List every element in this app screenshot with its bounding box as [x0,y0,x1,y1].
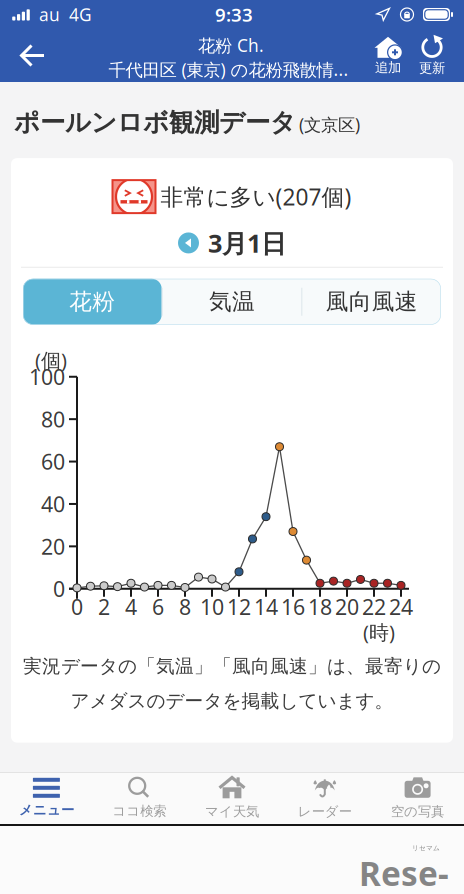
staticText: ポールンロボ観測データ [14,107,296,138]
staticText: アメダスのデータを掲載しています。 [70,690,393,713]
button[interactable]: 風向風速 [302,279,441,325]
staticText: 14 [254,593,278,621]
button[interactable]: 更新 [410,29,464,82]
staticText: 40 [41,490,65,518]
staticText: 花粉 [69,288,115,316]
button[interactable]: メニュー [0,776,93,820]
staticText: (個) [35,347,67,373]
staticText: 8 [179,593,191,621]
staticText: (文京区) [299,113,360,136]
staticText: 花粉 Ch. [198,34,264,57]
staticText: au [39,3,60,26]
staticText: 更新 [419,60,445,76]
staticText: 16 [281,593,305,621]
staticText: リセマム [412,844,440,852]
button[interactable]: マイ天気 [186,776,278,820]
staticText: 実況データの「気温」「風向風速」は、最寄りの [23,655,441,678]
staticText: 22 [362,593,386,621]
staticText: メニュー [19,802,74,818]
staticText: ココ検索 [112,803,166,819]
staticText: 2 [98,593,110,621]
staticText: 3月1日 [208,226,286,260]
staticText: 非常に多い(207個) [160,182,351,212]
button[interactable]: 追加 [366,29,410,82]
staticText: 20 [335,593,359,621]
staticText: 60 [41,447,65,476]
staticText: 追加 [375,59,401,76]
staticText: ReseMom. [359,851,453,894]
staticText: 空の写真 [391,803,444,820]
button[interactable]: レーダー [278,776,371,820]
staticText: 風向風速 [326,288,418,316]
staticText: 80 [41,405,65,433]
staticText: レーダー [298,803,352,820]
staticText: 気温 [209,288,255,316]
staticText: 千代田区 (東京) の花粉飛散情報[20... [108,58,353,81]
staticText: 6 [152,593,164,621]
button[interactable]: 花粉 [23,279,162,325]
staticText: 24 [389,593,413,621]
staticText: 0 [71,593,83,621]
staticText: 9:33 [215,2,253,27]
button[interactable]: 気温 [163,279,301,325]
staticText: 12 [227,593,251,621]
button[interactable]: 空の写真 [371,776,464,820]
staticText: (時) [363,619,395,645]
staticText: 0 [53,575,65,603]
staticText: 20 [41,532,65,560]
staticText: 10 [200,593,224,621]
staticText: 4 [125,593,137,621]
staticText: 18 [308,593,332,621]
button[interactable]: ココ検索 [93,776,186,820]
button[interactable]: 戻る [0,29,58,82]
staticText: マイ天気 [205,803,259,820]
staticText: 4G [69,3,92,26]
staticText: 100 [29,363,65,391]
